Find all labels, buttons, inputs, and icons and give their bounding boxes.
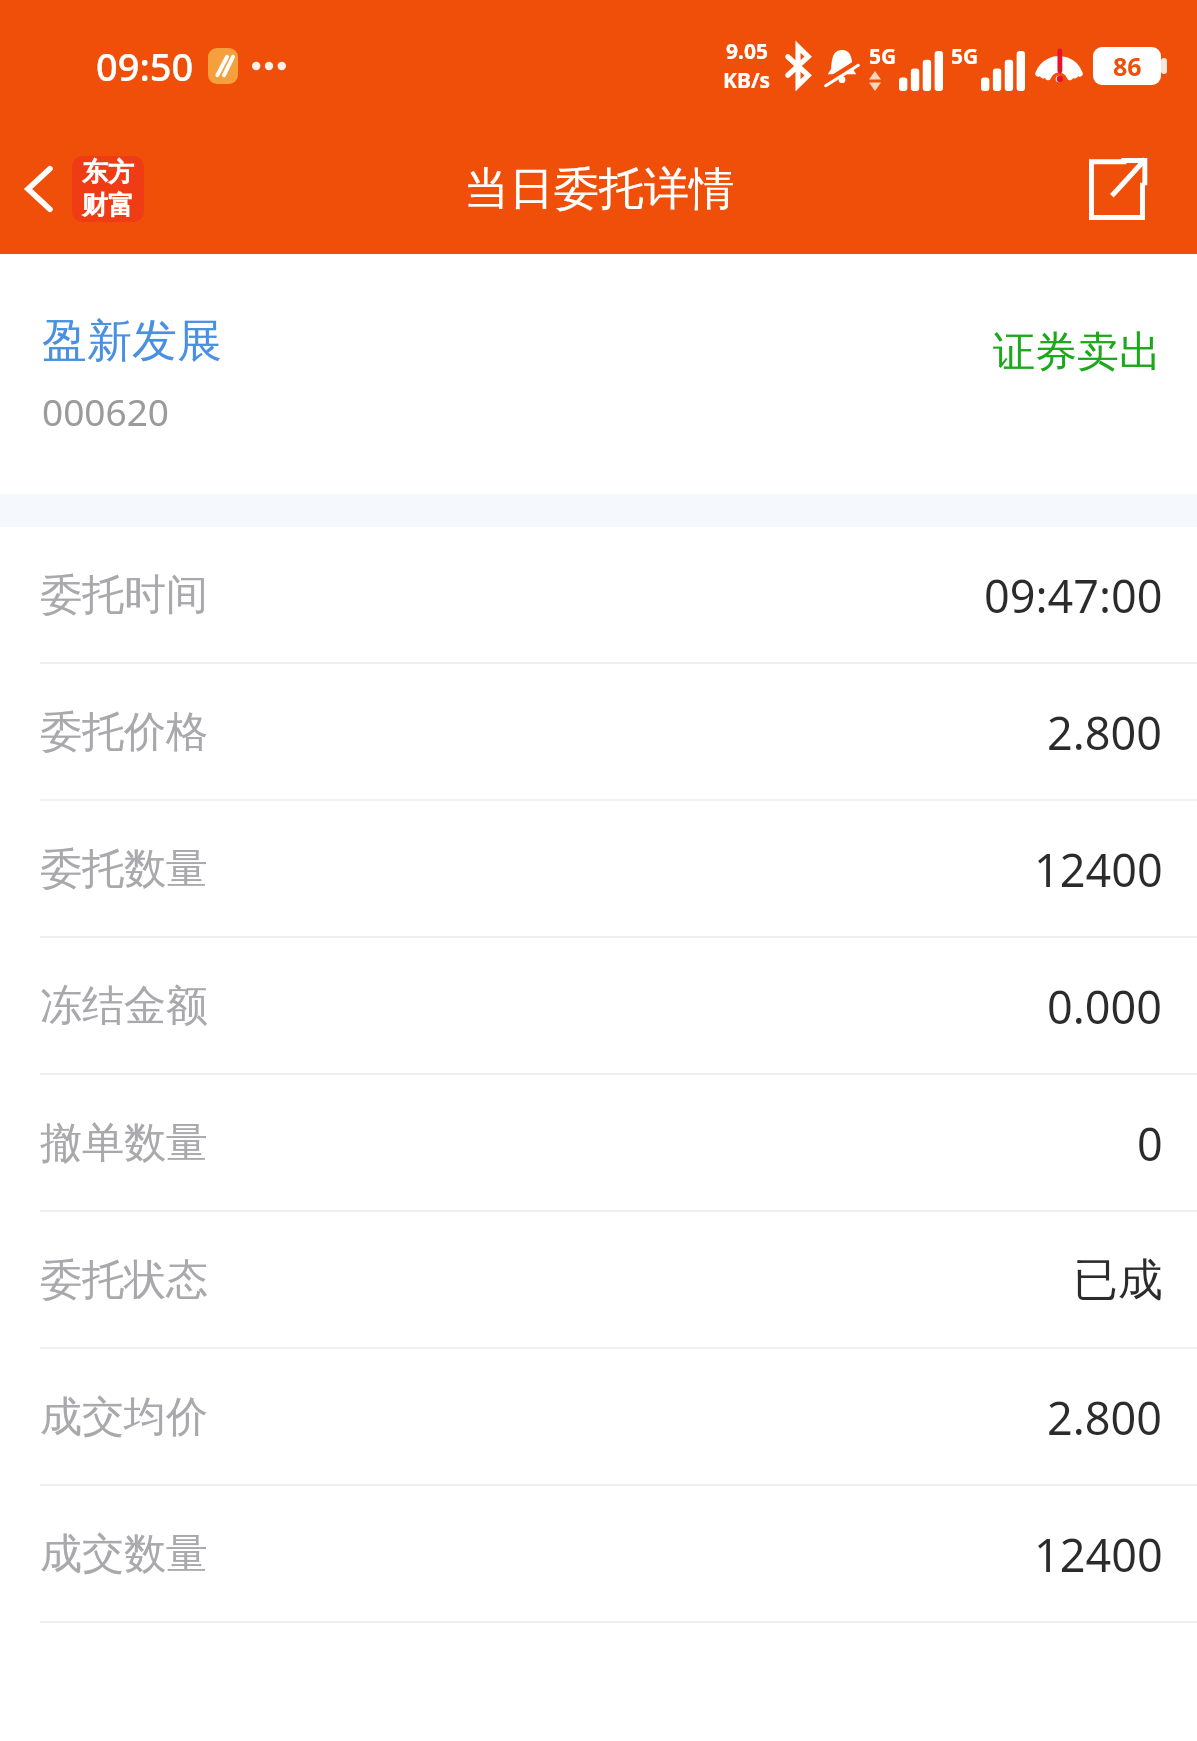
button[interactable]: 盈新发展 (0, 254, 1197, 494)
button[interactable]: 撤单数量 (0, 1075, 1197, 1212)
button[interactable]: 委托数量 (0, 801, 1197, 938)
staticText: 已成 (1073, 1252, 1163, 1309)
staticText: KB/s (723, 66, 771, 95)
staticText: 2.800 (1047, 702, 1163, 763)
staticText: 12400 (1034, 1524, 1163, 1585)
staticText: 东方 (82, 156, 134, 189)
button[interactable]: 成交均价 (0, 1349, 1197, 1486)
staticText: 当日委托详情 (464, 161, 734, 218)
staticText: 委托状态 (40, 1254, 208, 1307)
staticText: 000620 (42, 386, 169, 436)
staticText: 委托价格 (40, 706, 208, 759)
staticText: 证券卖出 (993, 326, 1161, 379)
staticText: 2.800 (1047, 1387, 1163, 1448)
staticText: 5G (869, 42, 897, 71)
button[interactable]: Share (1073, 145, 1161, 233)
staticText: 0 (1137, 1113, 1163, 1174)
staticText: 5G (951, 42, 979, 71)
button[interactable]: 委托时间 (0, 527, 1197, 664)
button[interactable]: 委托状态 (0, 1212, 1197, 1349)
staticText: 委托时间 (40, 569, 208, 622)
staticText: 成交数量 (40, 1528, 208, 1581)
button[interactable]: 委托价格 (0, 664, 1197, 801)
staticText: 委托数量 (40, 843, 208, 896)
staticText: 86 (1113, 49, 1142, 83)
button[interactable]: 成交数量 (0, 1486, 1197, 1623)
staticText: 财富 (82, 189, 134, 222)
button[interactable]: 东方财富 (72, 156, 144, 222)
button[interactable]: 冻结金额 (0, 938, 1197, 1075)
staticText: 0.000 (1047, 976, 1163, 1037)
staticText: 成交均价 (40, 1391, 208, 1444)
button[interactable]: Back (0, 124, 78, 254)
staticText: 12400 (1034, 839, 1163, 900)
staticText: 撤单数量 (40, 1117, 208, 1170)
staticText: 09:47:00 (984, 565, 1163, 626)
staticText: 09:50 (96, 40, 194, 92)
staticText: 9.05 (726, 37, 768, 66)
staticText: 冻结金额 (40, 980, 208, 1033)
staticText: 盈新发展 (42, 313, 222, 370)
